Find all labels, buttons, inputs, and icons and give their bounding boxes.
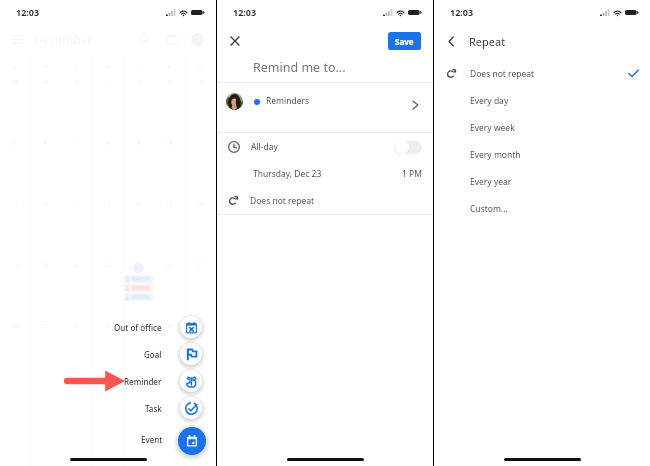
staticText: 12:03 bbox=[16, 6, 40, 18]
staticText: 8 bbox=[106, 139, 110, 146]
button[interactable]: Out of office bbox=[100, 312, 206, 342]
staticText: Goal bbox=[144, 349, 162, 360]
staticText: 12:03 bbox=[233, 6, 257, 18]
button[interactable]: Every month bbox=[434, 141, 650, 168]
button[interactable]: Reminder bbox=[100, 366, 206, 396]
button[interactable]: Does not repeat bbox=[434, 60, 650, 87]
staticText: F bbox=[168, 63, 171, 70]
staticText: Remind me to... bbox=[253, 59, 346, 76]
staticText: Every week bbox=[470, 122, 515, 134]
button[interactable]: Every day bbox=[434, 87, 650, 114]
button[interactable]: Goal bbox=[100, 339, 206, 369]
staticText: 23 bbox=[135, 264, 142, 271]
button[interactable]: Close bbox=[226, 32, 243, 49]
button[interactable]: Every week bbox=[434, 114, 650, 141]
staticText: Reminder bbox=[124, 376, 162, 387]
staticText: 28 bbox=[73, 322, 80, 329]
staticText: Task bbox=[145, 403, 162, 414]
staticText: 4 bbox=[199, 78, 203, 85]
button[interactable]: Custom... bbox=[434, 195, 650, 222]
staticText: M bbox=[43, 63, 48, 70]
staticText: Reminders bbox=[266, 95, 310, 107]
staticText: Does not repeat bbox=[250, 195, 315, 207]
button[interactable]: Every year bbox=[434, 168, 650, 195]
staticText: Out of office bbox=[114, 322, 162, 333]
staticText: Every month bbox=[470, 149, 521, 161]
staticText: All-day bbox=[251, 141, 278, 153]
button[interactable]: Reminders bbox=[217, 83, 433, 132]
button[interactable]: Back bbox=[443, 33, 460, 50]
staticText: 1 bbox=[199, 322, 203, 329]
button[interactable]: Does not repeat bbox=[217, 187, 433, 214]
staticText: Save bbox=[395, 36, 414, 47]
staticText: Repeat bbox=[469, 34, 506, 49]
button[interactable]: Task bbox=[100, 393, 206, 423]
button[interactable]: Thursday, Dec 23 bbox=[217, 160, 433, 187]
staticText: 28 bbox=[12, 78, 19, 85]
staticText: 12:03 bbox=[450, 6, 474, 18]
staticText: December bbox=[34, 31, 93, 47]
staticText: Every year bbox=[470, 176, 512, 188]
staticText: W bbox=[105, 63, 111, 70]
staticText: Does not repeat bbox=[470, 68, 535, 80]
staticText: 30 bbox=[135, 322, 142, 329]
staticText: Thursday, Dec 23 bbox=[253, 168, 322, 180]
button[interactable]: All-day bbox=[217, 133, 433, 160]
staticText: 1 PM bbox=[402, 168, 422, 180]
button[interactable]: Create event bbox=[178, 427, 206, 455]
staticText: Custom... bbox=[470, 203, 508, 215]
staticText: Every day bbox=[470, 95, 509, 107]
staticText: Event bbox=[141, 434, 163, 445]
button[interactable]: Save bbox=[388, 32, 421, 50]
